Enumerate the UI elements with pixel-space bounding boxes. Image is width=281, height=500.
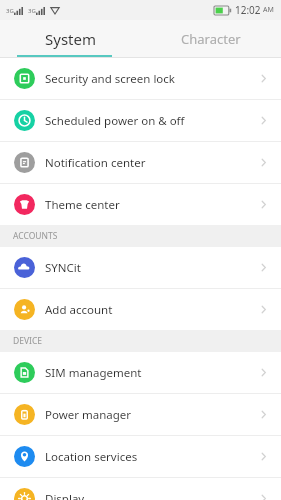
button[interactable]: Theme center bbox=[0, 184, 281, 225]
staticText: Add account bbox=[45, 302, 258, 318]
staticText: Power manager bbox=[45, 407, 258, 423]
button[interactable]: SIM management bbox=[0, 352, 281, 393]
button[interactable]: Notification center bbox=[0, 142, 281, 183]
staticText: 12:02 bbox=[235, 3, 261, 17]
staticText: 3G bbox=[28, 7, 36, 15]
staticText: Scheduled power on & off bbox=[45, 113, 258, 129]
button[interactable]: System bbox=[0, 20, 140, 58]
button[interactable]: Location services bbox=[0, 436, 281, 477]
button[interactable]: SYNCit bbox=[0, 247, 281, 288]
staticText: Display bbox=[45, 491, 258, 500]
button[interactable]: Scheduled power on & off bbox=[0, 100, 281, 141]
button[interactable]: Character bbox=[140, 20, 281, 58]
button[interactable]: Security and screen lock bbox=[0, 58, 281, 99]
staticText: Notification center bbox=[45, 155, 258, 171]
staticText: Security and screen lock bbox=[45, 71, 258, 87]
staticText: System bbox=[45, 29, 96, 49]
staticText: SIM management bbox=[45, 365, 258, 381]
button[interactable]: Add account bbox=[0, 289, 281, 330]
staticText: Location services bbox=[45, 449, 258, 465]
staticText: Theme center bbox=[45, 197, 258, 213]
staticText: 3G bbox=[6, 7, 14, 15]
button[interactable]: Display bbox=[0, 478, 281, 500]
staticText: Character bbox=[181, 30, 241, 48]
staticText: AM bbox=[263, 5, 274, 15]
staticText: DEVICE bbox=[13, 335, 43, 347]
staticText: ACCOUNTS bbox=[13, 230, 58, 242]
button[interactable]: Power manager bbox=[0, 394, 281, 435]
staticText: SYNCit bbox=[45, 260, 258, 276]
